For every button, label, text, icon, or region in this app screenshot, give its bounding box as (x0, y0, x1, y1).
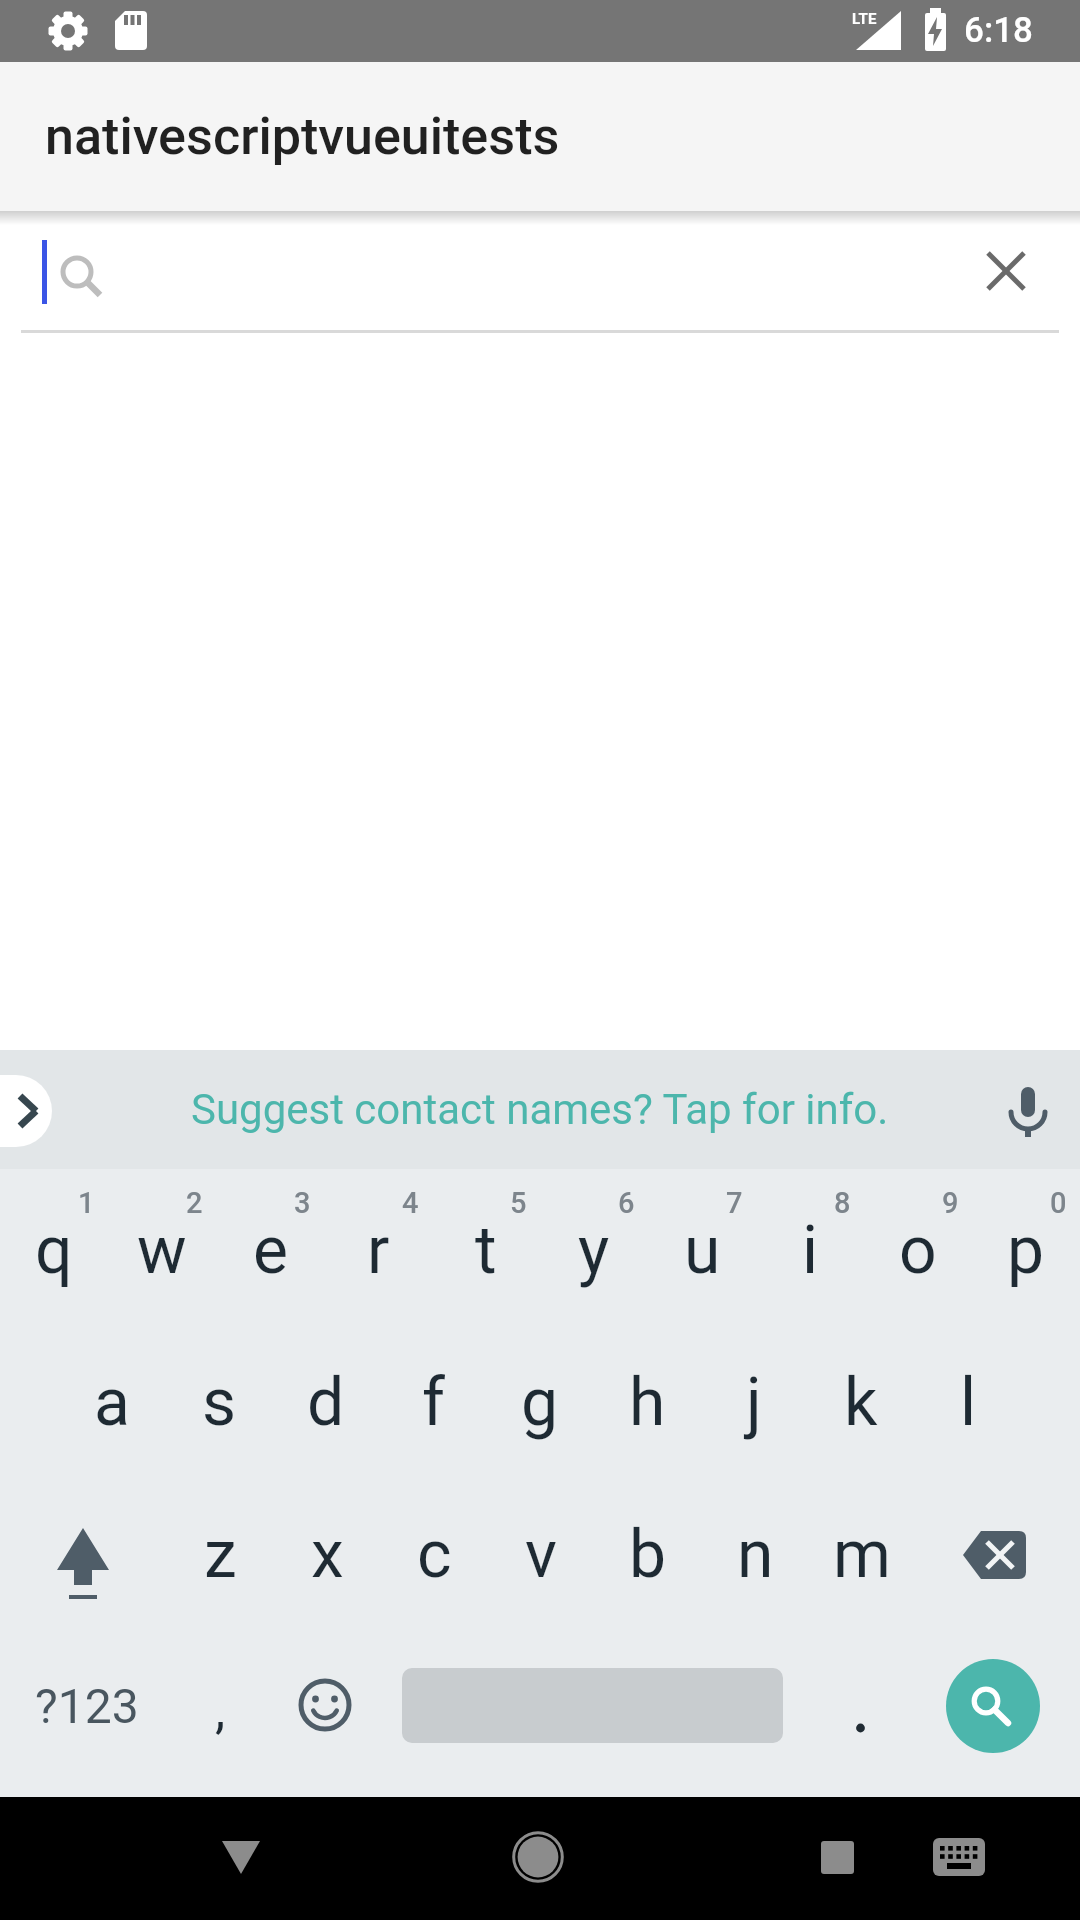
staticText: 1 (78, 1186, 95, 1220)
staticText: t (475, 1212, 497, 1289)
button[interactable]: ?123 (27, 1630, 147, 1782)
staticText: p (1007, 1212, 1045, 1289)
button[interactable]: w (109, 1174, 215, 1326)
staticText: 6:18 (964, 10, 1033, 51)
button[interactable]: f (380, 1326, 486, 1478)
button[interactable]: m (809, 1478, 915, 1630)
staticText: n (737, 1516, 774, 1593)
staticText: Suggest contact names? Tap for info. (191, 1085, 889, 1134)
staticText: w (137, 1212, 187, 1289)
button[interactable]: b (595, 1478, 701, 1630)
button[interactable]: d (273, 1326, 379, 1478)
staticText: 3 (294, 1186, 311, 1220)
button[interactable] (497, 1815, 583, 1901)
button[interactable] (21, 231, 961, 311)
button[interactable] (792, 1815, 878, 1901)
staticText: 4 (402, 1186, 419, 1220)
staticText: i (802, 1212, 819, 1289)
button[interactable]: v (488, 1478, 594, 1630)
button[interactable] (978, 243, 1034, 299)
staticText: 0 (1050, 1186, 1067, 1220)
button[interactable]: g (487, 1326, 593, 1478)
staticText: m (833, 1516, 891, 1593)
staticText: 5 (510, 1186, 527, 1220)
button[interactable] (20, 1489, 150, 1619)
button[interactable]: c (381, 1478, 487, 1630)
button[interactable] (271, 1660, 379, 1752)
button[interactable] (0, 1075, 52, 1147)
button[interactable]: e (217, 1174, 323, 1326)
staticText: s (202, 1364, 237, 1441)
staticText: k (844, 1364, 878, 1441)
button[interactable]: q (1, 1174, 107, 1326)
staticText: x (311, 1516, 344, 1593)
button[interactable]: u (649, 1174, 755, 1326)
button[interactable]: j (701, 1326, 807, 1478)
button[interactable]: Suggest contact names? Tap for info. (191, 1085, 889, 1134)
staticText: h (629, 1364, 666, 1441)
staticText: 6 (618, 1186, 635, 1220)
staticText: u (684, 1212, 721, 1289)
button[interactable]: r (325, 1174, 431, 1326)
staticText: l (960, 1364, 977, 1441)
staticText: LTE (852, 10, 877, 28)
staticText: a (94, 1364, 130, 1441)
button[interactable] (935, 1489, 1065, 1619)
button[interactable]: x (274, 1478, 380, 1630)
button[interactable]: i (757, 1174, 863, 1326)
staticText: e (253, 1212, 288, 1289)
button[interactable]: y (541, 1174, 647, 1326)
staticText: o (899, 1212, 937, 1289)
button[interactable]: o (865, 1174, 971, 1326)
staticText: q (35, 1212, 73, 1289)
staticText: r (367, 1212, 390, 1289)
button[interactable]: a (59, 1326, 165, 1478)
button[interactable]: , (167, 1634, 273, 1786)
staticText: j (746, 1364, 762, 1441)
staticText: 7 (726, 1186, 743, 1220)
staticText: 8 (834, 1186, 851, 1220)
staticText: 2 (186, 1186, 203, 1220)
button[interactable]: z (167, 1478, 273, 1630)
staticText: z (204, 1516, 237, 1593)
staticText: d (307, 1364, 345, 1441)
staticText: c (417, 1516, 452, 1593)
staticText: v (525, 1516, 557, 1593)
button[interactable] (1000, 1082, 1056, 1138)
staticText: ?123 (35, 1678, 139, 1734)
button[interactable]: h (594, 1326, 700, 1478)
button[interactable]: s (166, 1326, 272, 1478)
staticText: f (422, 1364, 445, 1441)
button[interactable]: l (915, 1326, 1021, 1478)
button[interactable] (946, 1659, 1040, 1753)
button[interactable]: k (808, 1326, 914, 1478)
staticText: g (521, 1364, 559, 1441)
button[interactable]: t (433, 1174, 539, 1326)
button[interactable]: p (973, 1174, 1079, 1326)
button[interactable] (198, 1815, 284, 1901)
staticText: b (629, 1516, 667, 1593)
button[interactable]: n (702, 1478, 808, 1630)
button[interactable] (918, 1815, 1004, 1901)
staticText: 9 (942, 1186, 959, 1220)
staticText: nativescriptvueuitests (45, 106, 560, 167)
staticText: y (578, 1212, 610, 1289)
staticText: , (215, 1680, 226, 1741)
